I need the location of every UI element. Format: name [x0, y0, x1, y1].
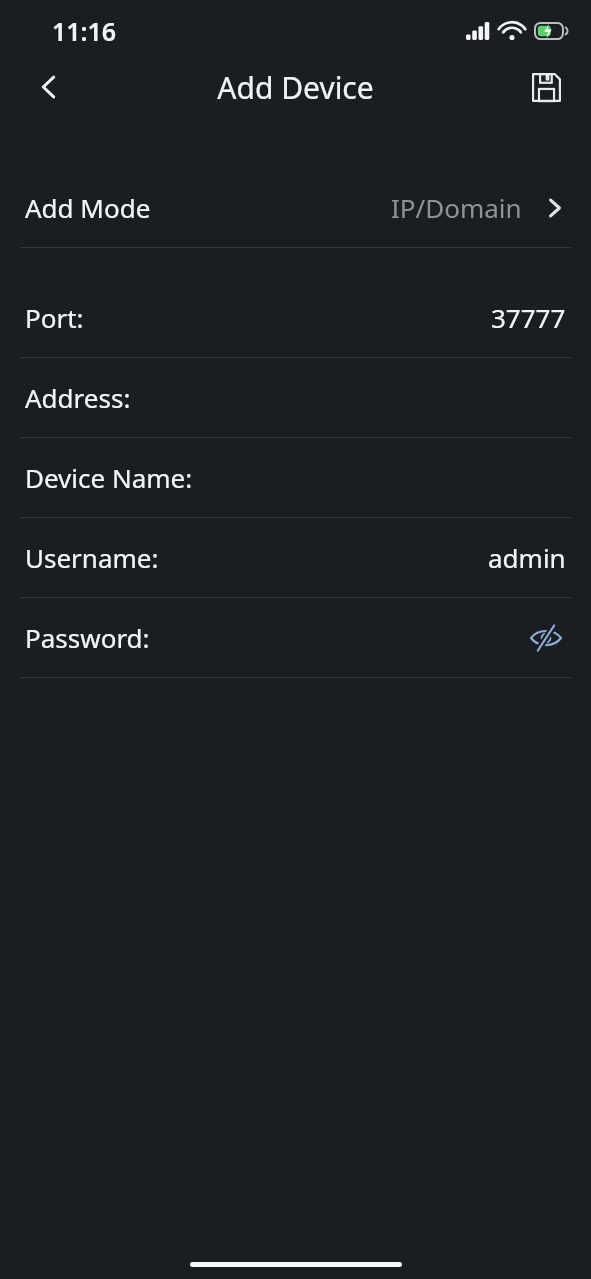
staticText: Add Mode — [25, 190, 151, 225]
button[interactable]: Add Mode — [0, 168, 591, 247]
button[interactable]: Password: — [0, 598, 591, 677]
staticText: Address: — [25, 380, 131, 415]
button[interactable]: Back — [18, 58, 80, 116]
staticText: Device Name: — [25, 460, 193, 495]
staticText: Password: — [25, 620, 150, 655]
button[interactable]: Device Name: — [0, 438, 591, 517]
staticText: IP/Domain — [391, 190, 522, 225]
staticText: 37777 — [491, 300, 566, 335]
staticText: Add Device — [217, 67, 374, 108]
staticText: 11:16 — [52, 14, 117, 48]
button[interactable]: Save — [515, 58, 577, 116]
button[interactable]: Username: — [0, 518, 591, 597]
staticText: Port: — [25, 300, 84, 335]
button[interactable]: Address: — [0, 358, 591, 437]
staticText: admin — [488, 540, 566, 575]
staticText: Username: — [25, 540, 159, 575]
button[interactable]: Port: — [0, 278, 591, 357]
button[interactable]: Show password — [526, 618, 566, 658]
